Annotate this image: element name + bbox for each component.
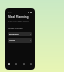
button[interactable]: Plan (21, 61, 27, 67)
staticText: Today's meals (8, 27, 23, 30)
button[interactable]: Recipes (13, 61, 19, 67)
button[interactable]: Lunch (8, 38, 32, 43)
staticText: Lunch (9, 39, 16, 42)
staticText: 9:41 (8, 11, 12, 13)
staticText: Meal Planning (8, 15, 29, 19)
button[interactable]: Profile (28, 61, 34, 67)
button[interactable]: Home (6, 61, 12, 67)
staticText: Plan your week ahead (8, 20, 29, 23)
button[interactable]: Breakfast (8, 32, 32, 36)
staticText: Breakfast (9, 33, 19, 36)
